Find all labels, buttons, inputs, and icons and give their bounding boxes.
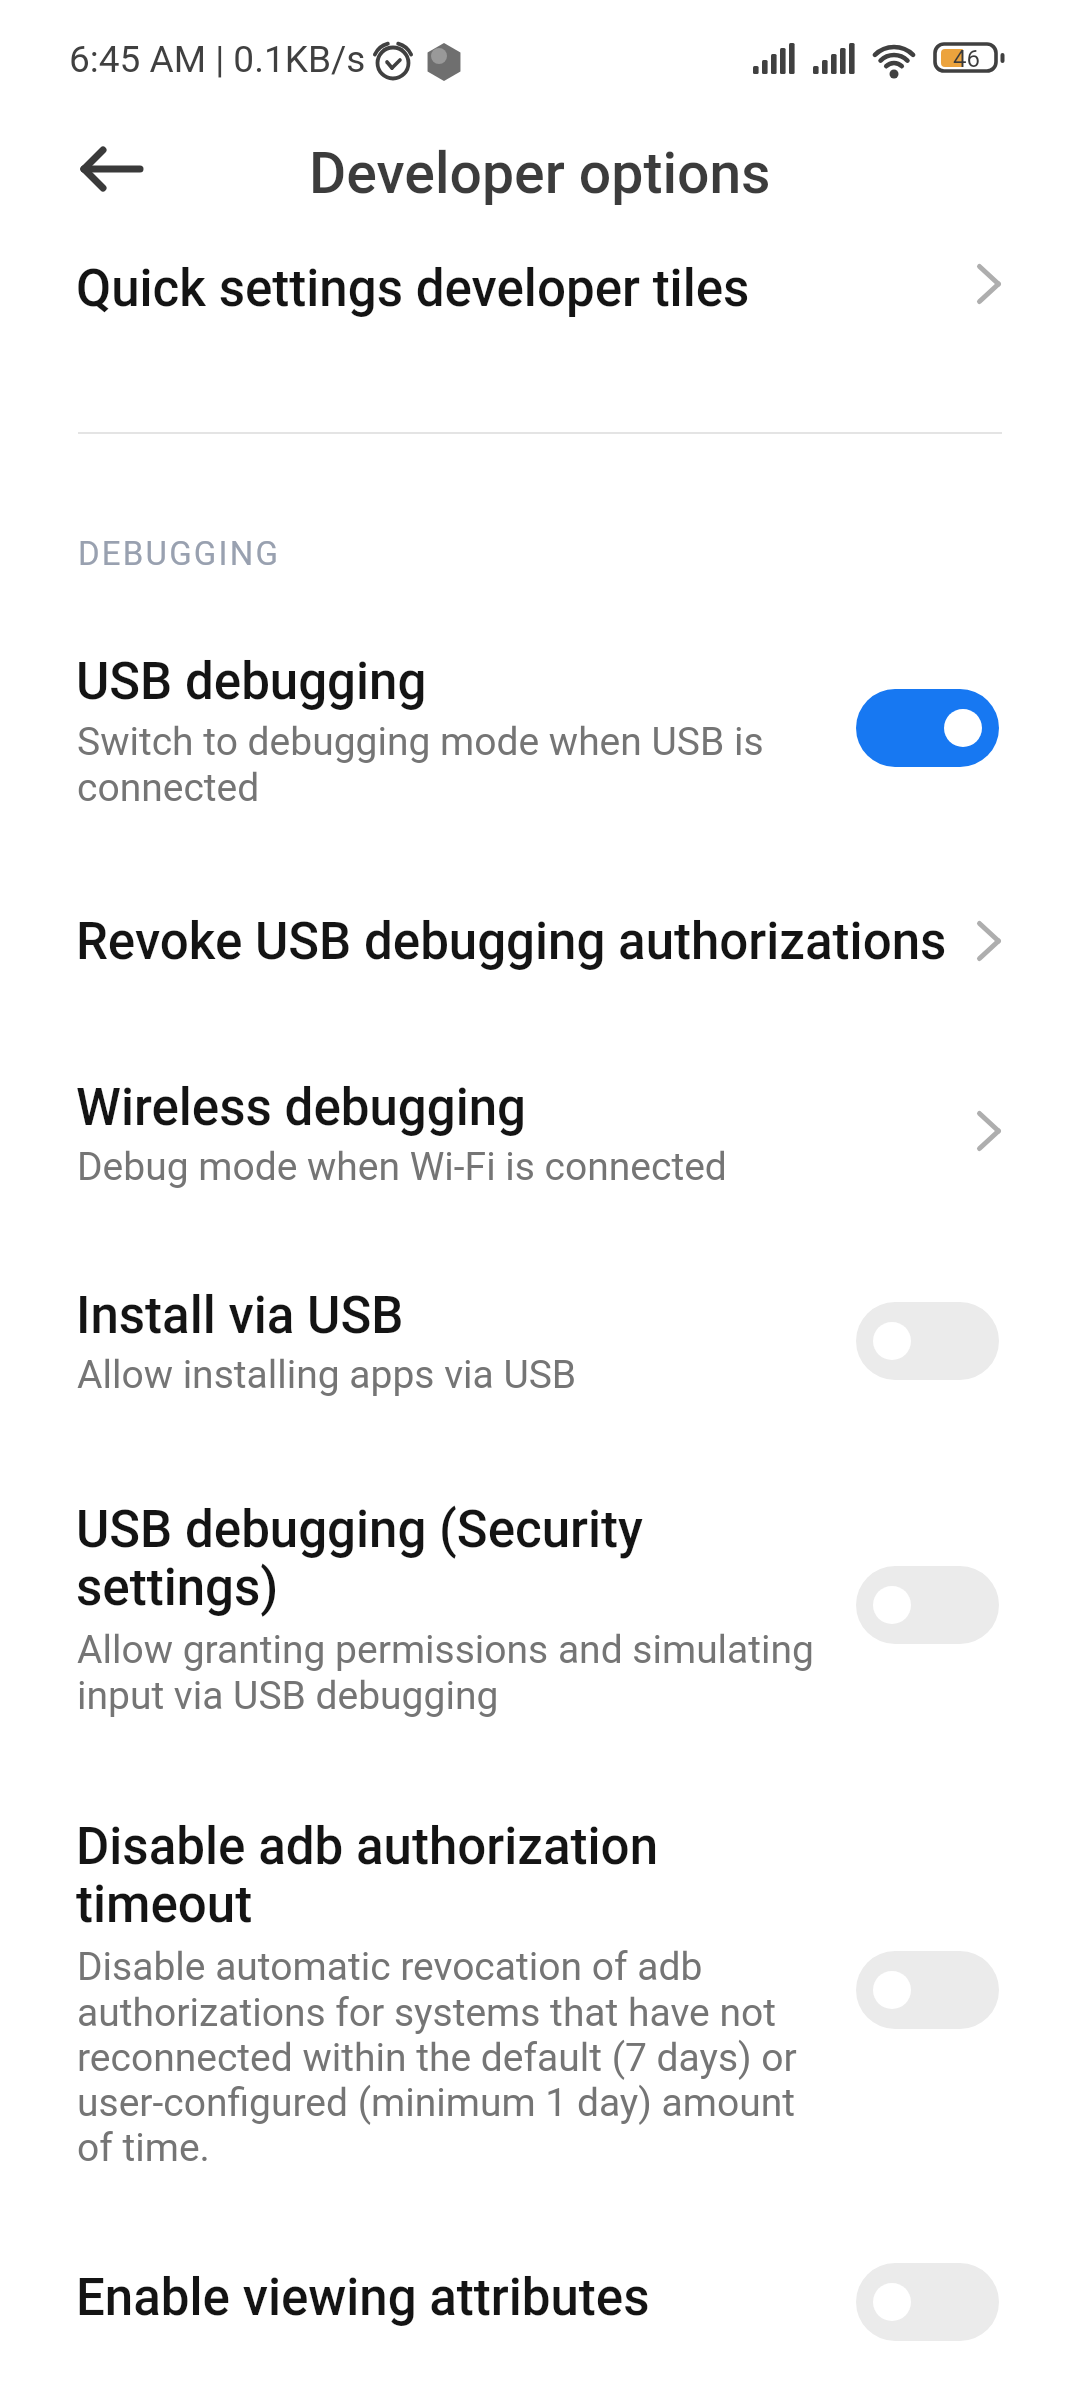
staticText: USB debugging (Security settings) xyxy=(76,1500,643,1617)
staticText: Enable viewing attributes xyxy=(76,2268,650,2328)
staticText: Quick settings developer tiles xyxy=(76,259,750,319)
staticText: 6:45 AM | 0.1KB/s xyxy=(69,38,366,81)
button[interactable] xyxy=(0,1480,1080,1725)
button[interactable] xyxy=(0,235,1080,339)
staticText: Allow granting permissions and simulatin… xyxy=(77,1627,815,1718)
button[interactable] xyxy=(856,1566,999,1644)
staticText: Switch to debugging mode when USB is con… xyxy=(77,719,764,810)
staticText: Revoke USB debugging authorizations xyxy=(76,912,947,972)
button[interactable] xyxy=(0,2245,1080,2360)
staticText: DEBUGGING xyxy=(78,534,281,573)
button[interactable] xyxy=(856,689,999,767)
staticText: Disable adb authorization timeout xyxy=(76,1817,658,1934)
button[interactable] xyxy=(0,1055,1080,1205)
button[interactable] xyxy=(0,890,1080,994)
staticText: Developer options xyxy=(309,140,771,207)
staticText: Wireless debugging xyxy=(76,1078,526,1138)
button[interactable] xyxy=(0,1800,1080,2195)
button[interactable] xyxy=(856,1951,999,2029)
staticText: Install via USB xyxy=(76,1286,404,1346)
button[interactable] xyxy=(80,146,144,194)
button[interactable] xyxy=(856,2263,999,2341)
staticText: Disable automatic revocation of adb auth… xyxy=(77,1944,797,2170)
staticText: Debug mode when Wi-Fi is connected xyxy=(77,1144,727,1190)
button[interactable] xyxy=(0,640,1080,820)
button[interactable] xyxy=(0,1270,1080,1420)
staticText: USB debugging xyxy=(76,652,427,712)
staticText: Allow installing apps via USB xyxy=(77,1352,577,1398)
button[interactable] xyxy=(856,1302,999,1380)
staticText: 46 xyxy=(953,45,980,73)
